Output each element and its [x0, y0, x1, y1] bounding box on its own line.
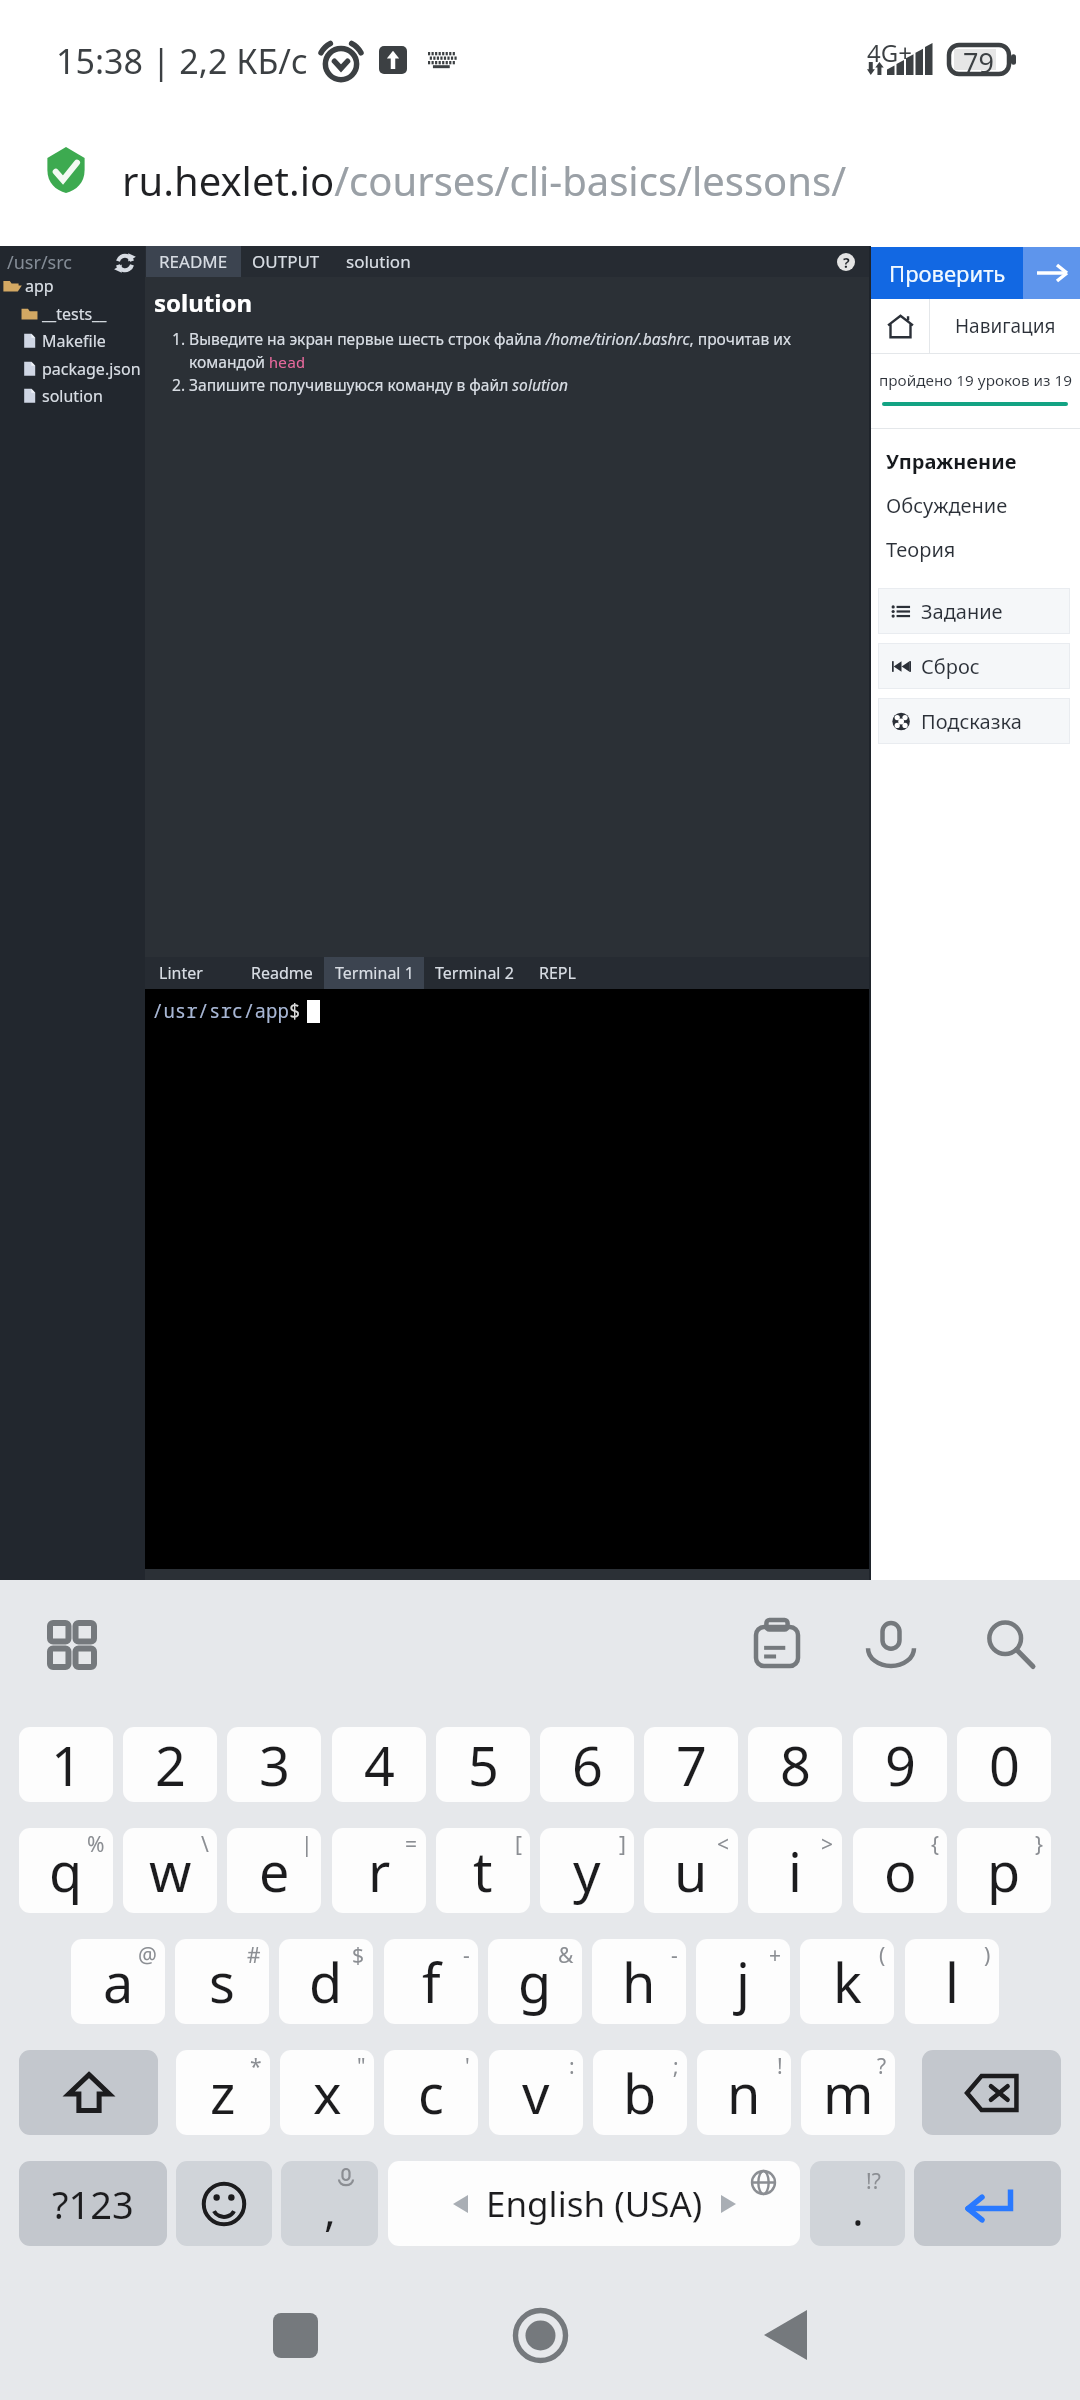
staticText: !?	[866, 2167, 881, 2196]
button[interactable]: a	[71, 1939, 165, 2024]
button[interactable]: 8	[748, 1727, 842, 1802]
staticText: 4G+	[867, 36, 912, 69]
button[interactable]: Shift	[19, 2050, 158, 2135]
button[interactable]: h	[592, 1939, 686, 2024]
button[interactable]: e	[227, 1828, 321, 1913]
button[interactable]: y	[540, 1828, 634, 1913]
button[interactable]: q	[19, 1828, 113, 1913]
button[interactable]: Задание	[878, 588, 1070, 634]
button[interactable]: Проверить	[871, 247, 1023, 299]
button[interactable]: Сброс	[878, 643, 1070, 689]
button[interactable]: l	[905, 1939, 999, 2024]
button[interactable]: Reader mode	[860, 238, 948, 318]
button[interactable]: English (USA)	[388, 2161, 800, 2246]
staticText: solution	[346, 250, 411, 273]
button[interactable]: 9	[853, 1727, 947, 1802]
button[interactable]: Упражнение	[886, 448, 1017, 475]
button[interactable]: b	[593, 2050, 687, 2135]
button[interactable]: Voice input	[862, 1615, 920, 1673]
button[interactable]: More options	[974, 238, 1054, 318]
button[interactable]: Switch keyboard layout	[44, 1617, 100, 1673]
button[interactable]: REPL	[525, 957, 589, 989]
staticText: Навигация	[955, 313, 1056, 339]
button[interactable]: 2	[123, 1727, 217, 1802]
staticText: ru.hexlet.io/courses/cli-basics/lessons/	[122, 153, 853, 207]
button[interactable]: n	[697, 2050, 791, 2135]
button[interactable]: 1	[19, 1727, 113, 1802]
button[interactable]: Back	[730, 2280, 840, 2390]
staticText: 6	[572, 1728, 603, 1802]
staticText: t	[473, 1834, 493, 1908]
button[interactable]: ?123	[19, 2161, 167, 2246]
button[interactable]: f	[384, 1939, 478, 2024]
staticText: ;	[673, 2052, 679, 2081]
button[interactable]: i	[748, 1828, 842, 1913]
button[interactable]: s	[175, 1939, 269, 2024]
button[interactable]: .	[810, 2161, 905, 2246]
button[interactable]: m	[801, 2050, 895, 2135]
button[interactable]: Help	[837, 253, 855, 271]
button[interactable]: 5	[436, 1727, 530, 1802]
button[interactable]: j	[696, 1939, 790, 2024]
staticText: q	[49, 1834, 83, 1908]
staticText: app	[25, 275, 54, 297]
button[interactable]: Теория	[886, 536, 956, 563]
button[interactable]: Обсуждение	[886, 492, 1008, 519]
button[interactable]: Backspace	[922, 2050, 1061, 2135]
button[interactable]: Search	[981, 1615, 1039, 1673]
button[interactable]: Recent apps	[240, 2280, 350, 2390]
button[interactable]: Terminal 2	[428, 957, 521, 989]
button[interactable]: Emoji	[176, 2161, 272, 2246]
button[interactable]: 0	[957, 1727, 1051, 1802]
button[interactable]: app	[0, 272, 145, 299]
button[interactable]: Next lesson	[1023, 247, 1080, 299]
button[interactable]: u	[644, 1828, 738, 1913]
staticText: -	[671, 1941, 678, 1970]
button[interactable]: Home	[871, 299, 929, 353]
button[interactable]: Makefile	[0, 327, 145, 354]
staticText: g	[518, 1945, 552, 2019]
staticText: Упражнение	[886, 448, 1017, 475]
button[interactable]: Home	[485, 2280, 595, 2390]
staticText: >	[821, 1830, 834, 1859]
button[interactable]: t	[436, 1828, 530, 1913]
button[interactable]: solution	[335, 246, 421, 277]
button[interactable]: Terminal 1	[324, 957, 424, 989]
button[interactable]: w	[123, 1828, 217, 1913]
staticText: Makefile	[42, 330, 106, 352]
button[interactable]: 4	[332, 1727, 426, 1802]
button[interactable]: Enter	[914, 2161, 1061, 2246]
button[interactable]: README	[146, 246, 241, 277]
button[interactable]: p	[957, 1828, 1051, 1913]
staticText: f	[422, 1945, 441, 2019]
staticText: l	[945, 1945, 959, 2019]
button[interactable]: d	[279, 1939, 373, 2024]
button[interactable]: o	[853, 1828, 947, 1913]
button[interactable]: Подсказка	[878, 698, 1070, 744]
staticText: Сброс	[921, 653, 980, 680]
button[interactable]: Readme	[242, 957, 322, 989]
button[interactable]: ,	[281, 2161, 378, 2246]
staticText: OUTPUT	[252, 250, 320, 273]
button[interactable]: Clipboard	[748, 1615, 806, 1673]
button[interactable]: solution	[0, 382, 145, 409]
staticText: &	[558, 1941, 574, 1970]
staticText: h	[622, 1945, 656, 2019]
button[interactable]: OUTPUT	[241, 246, 331, 277]
button[interactable]: package.json	[0, 355, 145, 382]
button[interactable]: __tests__	[0, 300, 145, 327]
button[interactable]: 7	[644, 1727, 738, 1802]
staticText: )	[984, 1941, 991, 1970]
button[interactable]: v	[489, 2050, 583, 2135]
button[interactable]: x	[280, 2050, 374, 2135]
button[interactable]: g	[488, 1939, 582, 2024]
button[interactable]: Навигация	[930, 299, 1080, 353]
button[interactable]: k	[800, 1939, 894, 2024]
button[interactable]: r	[332, 1828, 426, 1913]
button[interactable]: 3	[227, 1727, 321, 1802]
button[interactable]: Refresh	[114, 252, 136, 274]
button[interactable]: z	[176, 2050, 270, 2135]
button[interactable]: 6	[540, 1727, 634, 1802]
button[interactable]: Linter	[145, 957, 216, 989]
button[interactable]: c	[384, 2050, 478, 2135]
